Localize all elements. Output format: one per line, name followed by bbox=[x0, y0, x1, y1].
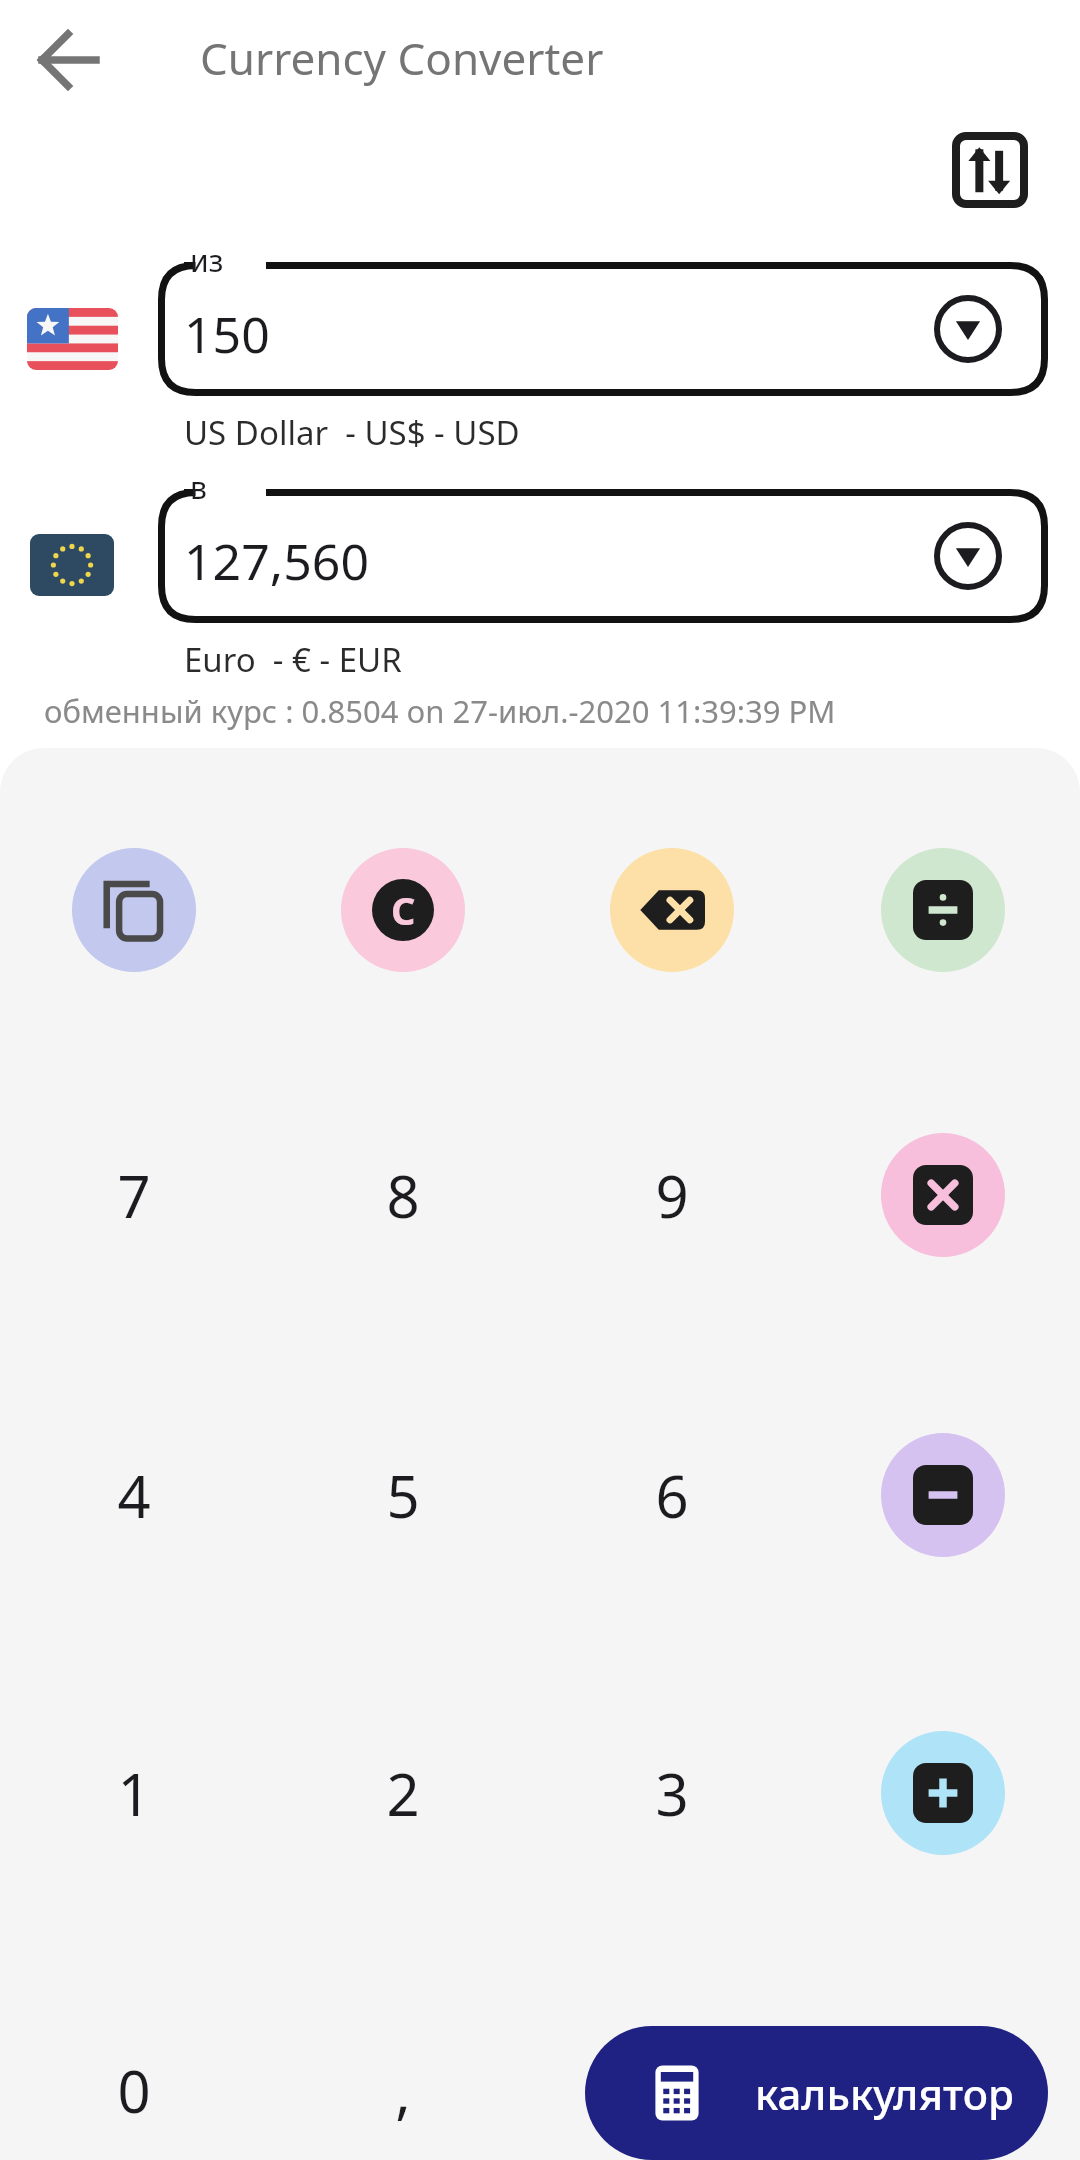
staticText: 0 bbox=[117, 2051, 151, 2130]
button[interactable]: калькулятор bbox=[585, 2026, 1048, 2160]
button[interactable]: 2 bbox=[323, 1713, 483, 1873]
staticText: в bbox=[190, 467, 207, 508]
staticText: 8 bbox=[386, 1156, 420, 1235]
staticText: 2 bbox=[386, 1754, 420, 1833]
button[interactable]: Back bbox=[28, 18, 112, 102]
staticText: C bbox=[391, 884, 416, 936]
button[interactable]: Select currency bbox=[933, 521, 1003, 591]
staticText: обменный курс : 0.8504 on 27-июл.-2020 1… bbox=[44, 690, 836, 732]
button[interactable]: Plus bbox=[881, 1731, 1005, 1855]
button[interactable]: Divide bbox=[881, 848, 1005, 972]
staticText: , bbox=[395, 2051, 411, 2130]
button[interactable]: Minus bbox=[881, 1433, 1005, 1557]
staticText: 9 bbox=[655, 1156, 689, 1235]
button[interactable]: 0 bbox=[54, 2010, 214, 2160]
button[interactable]: 5 bbox=[323, 1415, 483, 1575]
staticText: 6 bbox=[655, 1456, 689, 1535]
button[interactable]: 1 bbox=[54, 1713, 214, 1873]
button[interactable]: Clear bbox=[341, 848, 465, 972]
button[interactable]: Backspace bbox=[610, 848, 734, 972]
button[interactable]: 127,560 bbox=[158, 489, 1048, 623]
button[interactable]: 150 bbox=[158, 262, 1048, 396]
staticText: 7 bbox=[117, 1156, 151, 1235]
staticText: Currency Converter bbox=[200, 28, 604, 88]
staticText: 4 bbox=[117, 1456, 151, 1535]
button[interactable]: 8 bbox=[323, 1115, 483, 1275]
staticText: Euro - € - EUR bbox=[184, 637, 402, 682]
staticText: 3 bbox=[655, 1754, 689, 1833]
button[interactable]: Select currency bbox=[933, 294, 1003, 364]
button[interactable]: Copy bbox=[72, 848, 196, 972]
button[interactable]: , bbox=[323, 2010, 483, 2160]
staticText: 5 bbox=[386, 1456, 420, 1535]
button[interactable]: Multiply bbox=[881, 1133, 1005, 1257]
staticText: калькулятор bbox=[755, 2065, 1014, 2122]
button[interactable]: 4 bbox=[54, 1415, 214, 1575]
staticText: 150 bbox=[184, 300, 270, 368]
staticText: 127,560 bbox=[184, 527, 369, 595]
staticText: из bbox=[190, 240, 224, 281]
button[interactable]: 7 bbox=[54, 1115, 214, 1275]
button[interactable]: Swap currencies bbox=[952, 132, 1028, 208]
staticText: US Dollar - US$ - USD bbox=[184, 410, 520, 455]
staticText: 1 bbox=[117, 1754, 151, 1833]
button[interactable]: 6 bbox=[592, 1415, 752, 1575]
button[interactable]: 3 bbox=[592, 1713, 752, 1873]
button[interactable]: 9 bbox=[592, 1115, 752, 1275]
